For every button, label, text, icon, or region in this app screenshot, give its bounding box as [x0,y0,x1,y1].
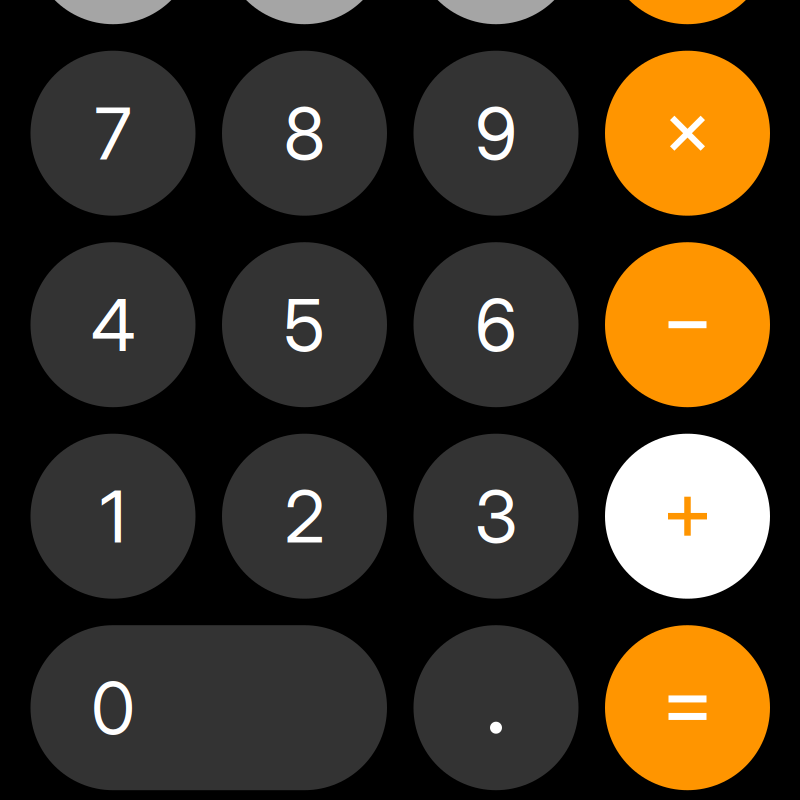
button[interactable]: 1 [30,434,195,599]
button[interactable]: Add [605,434,770,599]
staticText: 6 [475,281,517,368]
button[interactable]: 4 [30,242,195,407]
staticText: 7 [94,90,131,177]
staticText: 2 [284,473,324,560]
button[interactable]: Subtract [605,242,770,407]
button[interactable]: 7 [30,51,195,216]
staticText: 5 [283,281,325,368]
staticText: 9 [475,90,517,177]
button[interactable]: Decimal point [413,625,578,790]
button[interactable]: 2 [222,434,387,599]
button[interactable]: 6 [413,242,578,407]
staticText: 0 [91,664,135,751]
staticText: 4 [91,281,135,368]
staticText: 1 [100,473,126,560]
button[interactable]: 5 [222,242,387,407]
staticText: 8 [283,90,325,177]
button[interactable]: +/− [222,0,387,24]
button[interactable]: 8 [222,51,387,216]
button[interactable]: AC [30,0,195,24]
button[interactable]: Multiply [605,51,770,216]
button[interactable]: % [413,0,578,24]
staticText: 3 [474,473,517,560]
button[interactable]: Divide [605,0,770,24]
button[interactable]: 3 [413,434,578,599]
button[interactable]: Equals [605,625,770,790]
button[interactable]: 0 [30,625,387,790]
button[interactable]: 9 [413,51,578,216]
